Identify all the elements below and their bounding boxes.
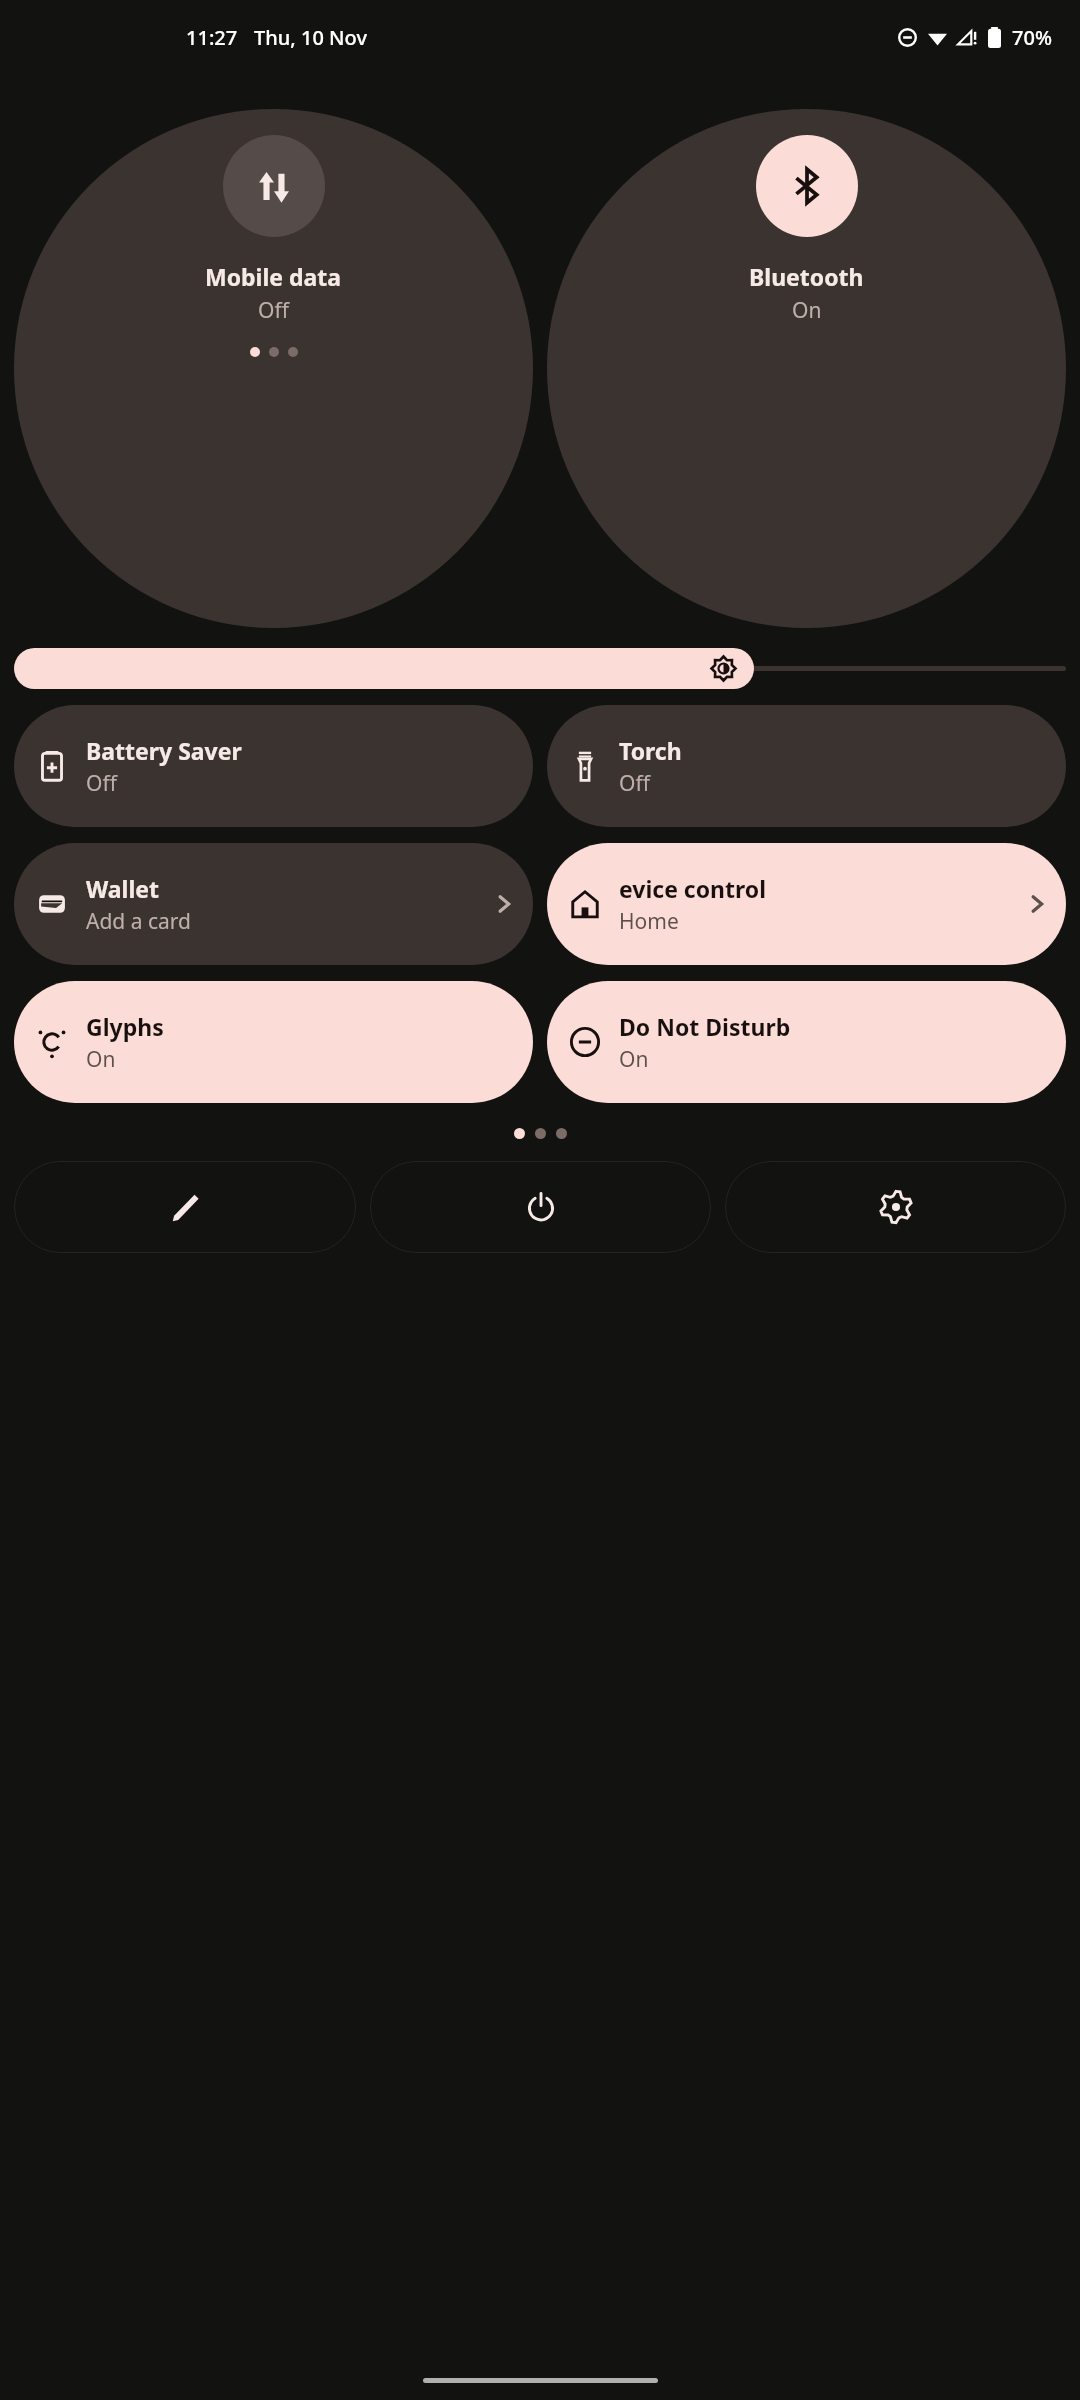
staticText: 70% bbox=[1012, 24, 1052, 51]
staticText: Bluetooth bbox=[749, 261, 864, 292]
button[interactable]: Settings bbox=[725, 1161, 1066, 1253]
staticText: Off bbox=[86, 769, 117, 798]
button[interactable]: Edit bbox=[14, 1161, 356, 1253]
staticText: 11:27 bbox=[186, 24, 238, 51]
staticText: On bbox=[619, 1045, 649, 1074]
staticText: Torch bbox=[619, 735, 682, 766]
staticText: Add a card bbox=[86, 907, 191, 936]
staticText: Home bbox=[619, 907, 679, 936]
staticText: Thu, 10 Nov bbox=[254, 24, 367, 51]
staticText: On bbox=[86, 1045, 116, 1074]
staticText: Do Not Disturb bbox=[619, 1011, 791, 1042]
staticText: Mobile data bbox=[205, 261, 342, 292]
staticText: Glyphs bbox=[86, 1011, 164, 1042]
button[interactable]: Wallet bbox=[14, 843, 533, 965]
staticText: Off bbox=[619, 769, 650, 798]
button[interactable]: evice control bbox=[547, 843, 1066, 965]
button[interactable]: Torch bbox=[547, 705, 1066, 827]
button[interactable]: Glyphs bbox=[14, 981, 533, 1103]
button[interactable]: Bluetooth bbox=[547, 109, 1066, 628]
staticText: On bbox=[792, 296, 822, 325]
button[interactable]: Mobile data bbox=[14, 109, 533, 628]
staticText: Wallet bbox=[86, 873, 159, 904]
button[interactable]: Power bbox=[370, 1161, 711, 1253]
button[interactable]: Do Not Disturb bbox=[547, 981, 1066, 1103]
staticText: Battery Saver bbox=[86, 735, 242, 766]
button[interactable]: Battery Saver bbox=[14, 705, 533, 827]
button[interactable]: Brightness bbox=[14, 648, 1066, 689]
staticText: evice control bbox=[619, 873, 767, 904]
staticText: Off bbox=[258, 296, 289, 325]
